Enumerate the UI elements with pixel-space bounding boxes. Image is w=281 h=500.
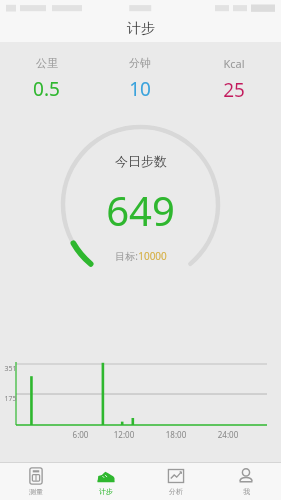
button[interactable]: 计步 — [71, 463, 141, 500]
button[interactable]: 分钟 — [93, 56, 187, 102]
staticText: 649 — [106, 183, 175, 237]
staticText: 25 — [223, 77, 245, 103]
staticText: 18:00 — [150, 429, 202, 440]
staticText: 175 — [4, 394, 17, 404]
button[interactable]: 我 — [211, 463, 281, 500]
staticText: 目标: — [115, 249, 138, 263]
button[interactable]: 测量 — [0, 463, 71, 500]
staticText: 12:00 — [98, 429, 150, 440]
staticText: 分析 — [169, 487, 183, 496]
button[interactable]: 公里 — [0, 56, 93, 102]
staticText: 10000 — [138, 249, 167, 263]
staticText: Kcal — [223, 56, 245, 71]
staticText: 今日步数 — [115, 153, 167, 169]
staticText: 10 — [129, 76, 151, 102]
staticText: 24:00 — [202, 429, 254, 440]
staticText: 计步 — [127, 20, 155, 38]
staticText: 0.5 — [33, 76, 60, 102]
staticText: 351 — [4, 364, 17, 374]
staticText: 6:00 — [63, 429, 98, 440]
staticText: 测量 — [29, 487, 43, 496]
button[interactable]: 分析 — [141, 463, 211, 500]
staticText: 分钟 — [129, 56, 151, 70]
staticText: 计步 — [99, 487, 113, 496]
staticText: 我 — [243, 487, 250, 496]
button[interactable]: Kcal — [187, 56, 281, 103]
staticText: 公里 — [36, 56, 58, 70]
